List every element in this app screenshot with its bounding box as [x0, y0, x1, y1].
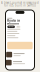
staticText: Map	[17, 26, 20, 28]
button[interactable]: All entries	[7, 26, 15, 28]
button[interactable]: Map	[16, 26, 20, 28]
staticText: All entries	[8, 26, 14, 28]
staticText: Autumn	[7, 22, 19, 25]
staticText: A travel journal reimagined	[1, 1, 39, 4]
staticText: Kyoto in	[7, 19, 20, 22]
button[interactable]	[7, 60, 33, 65]
button[interactable]	[7, 52, 33, 57]
staticText: for iOS, built in SwiftUI	[4, 4, 36, 7]
